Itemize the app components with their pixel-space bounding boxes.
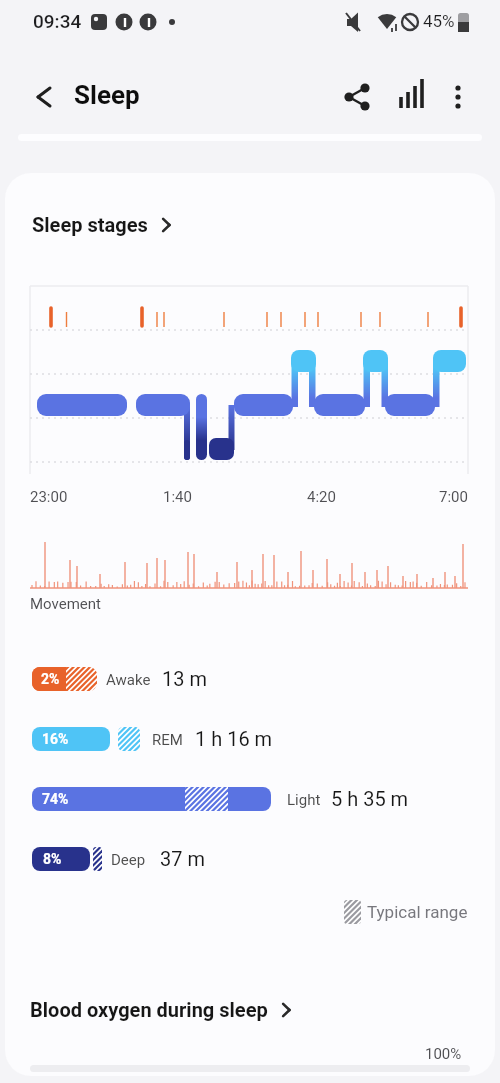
staticText: Blood oxygen during sleep xyxy=(30,998,268,1021)
staticText: 100% xyxy=(425,1045,462,1063)
staticText: Light xyxy=(287,791,321,809)
staticText: 09:34 xyxy=(33,10,82,32)
staticText: 23:00 xyxy=(30,488,68,506)
staticText: 4:20 xyxy=(307,488,336,506)
staticText: Deep xyxy=(111,851,146,869)
staticText: Movement xyxy=(30,595,101,613)
staticText: 16% xyxy=(42,731,69,747)
button[interactable]: Blood oxygen during sleep xyxy=(30,998,294,1038)
staticText: 13 m xyxy=(162,667,207,690)
button[interactable] xyxy=(438,77,478,117)
button[interactable] xyxy=(337,77,377,117)
staticText: 7:00 xyxy=(439,488,468,506)
staticText: 5 h 35 m xyxy=(331,787,409,810)
staticText: 8% xyxy=(43,851,62,867)
staticText: 37 m xyxy=(160,847,205,870)
button[interactable]: Sleep stages xyxy=(32,213,174,253)
staticText: Sleep xyxy=(74,80,140,110)
staticText: Typical range xyxy=(367,902,468,922)
staticText: 45% xyxy=(423,11,455,31)
button[interactable] xyxy=(24,77,64,117)
button[interactable] xyxy=(392,77,432,117)
staticText: REM xyxy=(152,731,183,749)
staticText: Sleep stages xyxy=(32,213,148,236)
staticText: 74% xyxy=(42,791,69,807)
staticText: 2% xyxy=(41,671,60,687)
staticText: Awake xyxy=(106,671,151,689)
staticText: 1:40 xyxy=(163,488,192,506)
staticText: 1 h 16 m xyxy=(195,727,273,750)
